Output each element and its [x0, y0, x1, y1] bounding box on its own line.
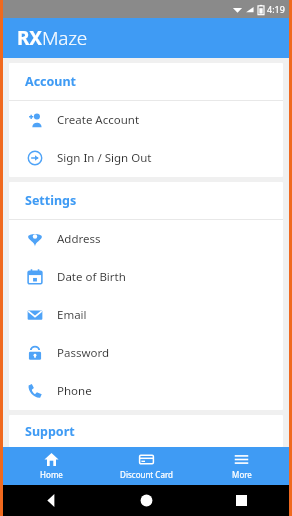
- staticText: Discount Card: [120, 469, 173, 480]
- button[interactable]: Home: [99, 485, 194, 516]
- staticText: Support: [25, 423, 75, 440]
- button[interactable]: Sign In / Sign Out: [9, 139, 283, 177]
- button[interactable]: Email: [9, 296, 283, 334]
- button[interactable]: More: [194, 447, 289, 485]
- staticText: Email: [57, 307, 87, 323]
- button[interactable]: Phone: [9, 372, 283, 410]
- staticText: Password: [57, 345, 110, 361]
- staticText: Home: [40, 469, 63, 480]
- button[interactable]: Recents: [194, 485, 289, 516]
- staticText: More: [232, 469, 252, 480]
- button[interactable]: Home: [3, 447, 99, 485]
- staticText: 4:19: [267, 3, 285, 15]
- staticText: Sign In / Sign Out: [57, 150, 152, 166]
- staticText: Phone: [57, 383, 92, 399]
- staticText: Settings: [25, 192, 77, 209]
- staticText: Address: [57, 231, 101, 247]
- button[interactable]: Date of Birth: [9, 258, 283, 296]
- button[interactable]: Discount Card: [99, 447, 194, 485]
- staticText: Date of Birth: [57, 269, 126, 285]
- button[interactable]: Back: [3, 485, 99, 516]
- staticText: Create Account: [57, 112, 140, 128]
- button[interactable]: Create Account: [9, 101, 283, 139]
- staticText: RX: [17, 25, 42, 51]
- staticText: Account: [25, 73, 77, 90]
- button[interactable]: Password: [9, 334, 283, 372]
- button[interactable]: Address: [9, 220, 283, 258]
- staticText: Maze: [42, 25, 87, 51]
